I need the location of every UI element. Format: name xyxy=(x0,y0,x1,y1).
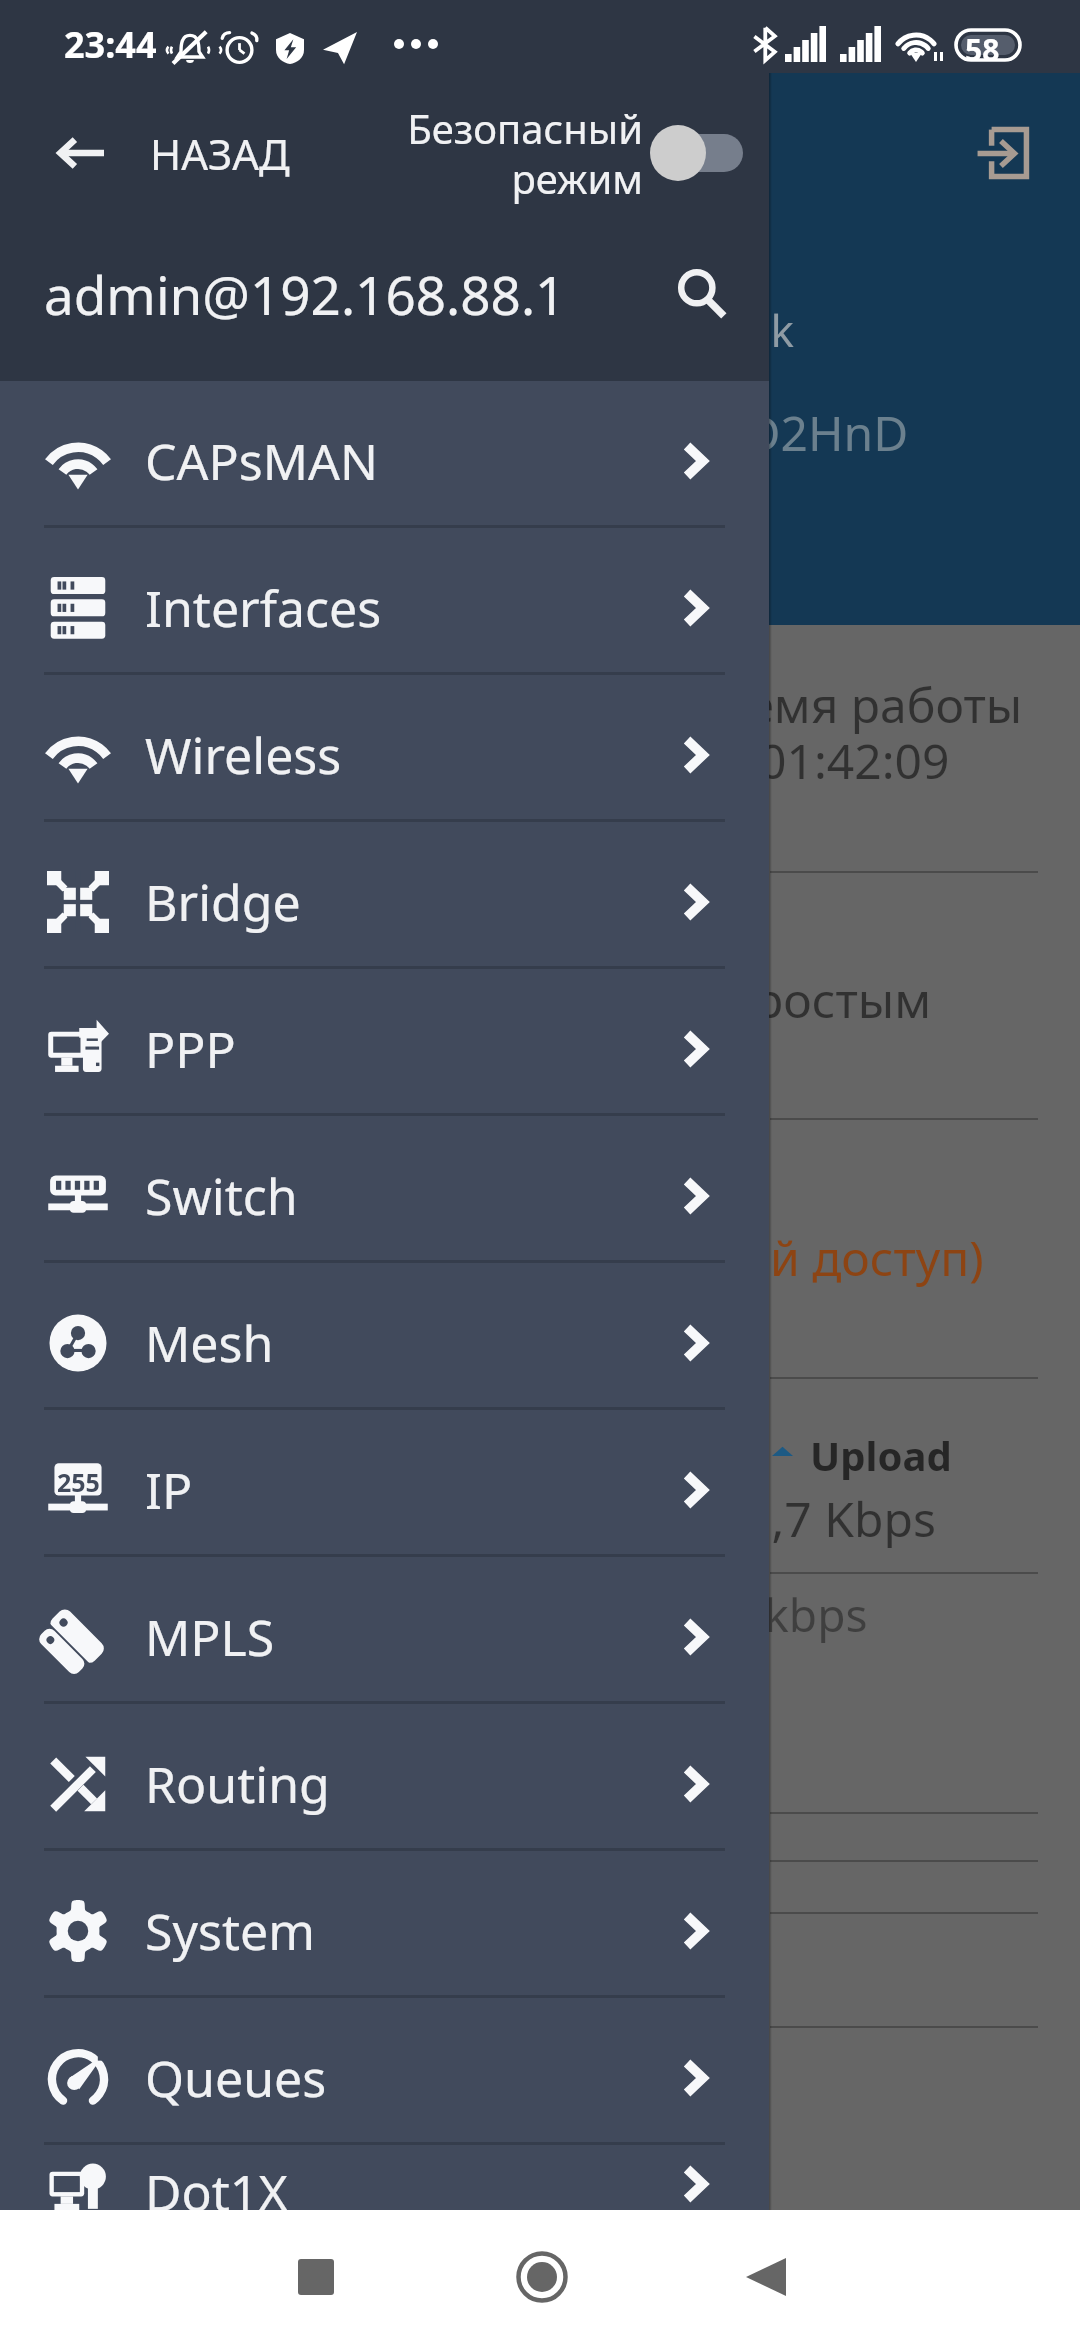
button[interactable]: PPP xyxy=(0,982,769,1116)
staticText: Mesh xyxy=(145,1309,274,1377)
staticText: Время работы xyxy=(687,672,1023,737)
staticText: Bridge xyxy=(145,868,301,936)
staticText: Routing xyxy=(145,1750,330,1818)
staticText: IP xyxy=(145,1456,193,1524)
button[interactable]: Recent apps xyxy=(262,2210,370,2340)
staticText: ный доступ) xyxy=(704,1225,984,1290)
other: Back xyxy=(48,125,104,181)
button[interactable]: MPLS xyxy=(0,1570,769,1704)
button[interactable]: Search xyxy=(647,239,757,349)
staticText: простым xyxy=(725,967,932,1032)
staticText: MikroTik xyxy=(616,300,794,360)
staticText: Interfaces xyxy=(145,574,382,642)
button[interactable]: Mesh xyxy=(0,1276,769,1410)
staticText: Dot1X xyxy=(145,2158,288,2210)
button[interactable]: Logout xyxy=(970,121,1034,185)
staticText: Wireless xyxy=(145,721,342,789)
button[interactable]: Interfaces xyxy=(0,541,769,675)
button[interactable]: Home xyxy=(488,2210,596,2340)
staticText: Upload xyxy=(810,1428,952,1482)
staticText: Switch xyxy=(145,1162,298,1230)
staticText: 2,7 Kbps xyxy=(744,1486,937,1551)
button[interactable]: Back xyxy=(712,2210,820,2340)
staticText: System xyxy=(145,1897,315,1965)
button[interactable]: Switch xyxy=(0,1129,769,1263)
staticText: 01:42:09 xyxy=(759,728,950,793)
staticText: НАЗАД xyxy=(150,125,290,182)
staticText: 23:44 xyxy=(64,20,157,69)
button[interactable]: Routing xyxy=(0,1717,769,1851)
button[interactable]: Безопасный режим xyxy=(407,73,769,233)
staticText: MPLS xyxy=(145,1603,275,1671)
staticText: PPP xyxy=(145,1015,236,1083)
button[interactable]: Queues xyxy=(0,2011,769,2145)
staticText: RBD52G-5HacD2HnD xyxy=(431,400,909,465)
staticText: Queues xyxy=(145,2044,327,2112)
staticText: 8 kbps xyxy=(726,1583,868,1646)
button[interactable]: CAPsMAN xyxy=(0,394,769,528)
button[interactable]: Wireless xyxy=(0,688,769,822)
button[interactable]: System xyxy=(0,1864,769,1998)
button[interactable]: 255 xyxy=(0,1423,769,1557)
staticText: 255 xyxy=(57,1465,100,1499)
staticText: admin@192.168.88.1 xyxy=(44,258,566,330)
button[interactable]: Back xyxy=(0,73,290,233)
staticText: CAPsMAN xyxy=(145,427,379,495)
staticText: 58 xyxy=(965,29,1000,70)
staticText: Безопасный режим xyxy=(407,101,643,206)
button[interactable]: Dot1X xyxy=(0,2158,769,2210)
button[interactable]: Bridge xyxy=(0,835,769,969)
